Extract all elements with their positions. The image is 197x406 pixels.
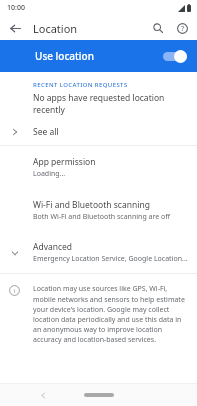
button[interactable]: App permission — [0, 146, 197, 189]
staticText: App permission — [33, 156, 96, 168]
staticText: Both Wi-Fi and Bluetooth scanning are of… — [33, 212, 171, 222]
button[interactable]: See all — [0, 119, 197, 145]
button[interactable]: Search — [147, 17, 169, 39]
staticText: Location may use sources like GPS, Wi-Fi… — [33, 284, 187, 344]
staticText: Wi-Fi and Bluetooth scanning — [33, 199, 150, 211]
button[interactable]: Back — [4, 17, 26, 39]
button[interactable]: Wi-Fi and Bluetooth scanning — [0, 189, 197, 232]
button[interactable]: Advanced — [0, 232, 197, 273]
staticText: No apps have requested location recently — [33, 92, 189, 116]
button[interactable]: Help — [171, 17, 193, 39]
staticText: Location — [33, 21, 78, 36]
staticText: Use location — [35, 49, 94, 63]
staticText: 10:00 — [7, 3, 25, 13]
staticText: See all — [33, 126, 59, 138]
button[interactable]: Use location — [0, 40, 197, 72]
staticText: i — [14, 287, 16, 295]
staticText: Emergency Location Service, Google Locat… — [33, 254, 188, 264]
staticText: RECENT LOCATION REQUESTS — [33, 81, 185, 89]
button[interactable]: Back — [36, 388, 50, 402]
button[interactable]: Home — [83, 390, 115, 400]
staticText: Loading... — [33, 169, 66, 179]
staticText: ? — [181, 24, 185, 34]
staticText: Advanced — [33, 241, 73, 253]
